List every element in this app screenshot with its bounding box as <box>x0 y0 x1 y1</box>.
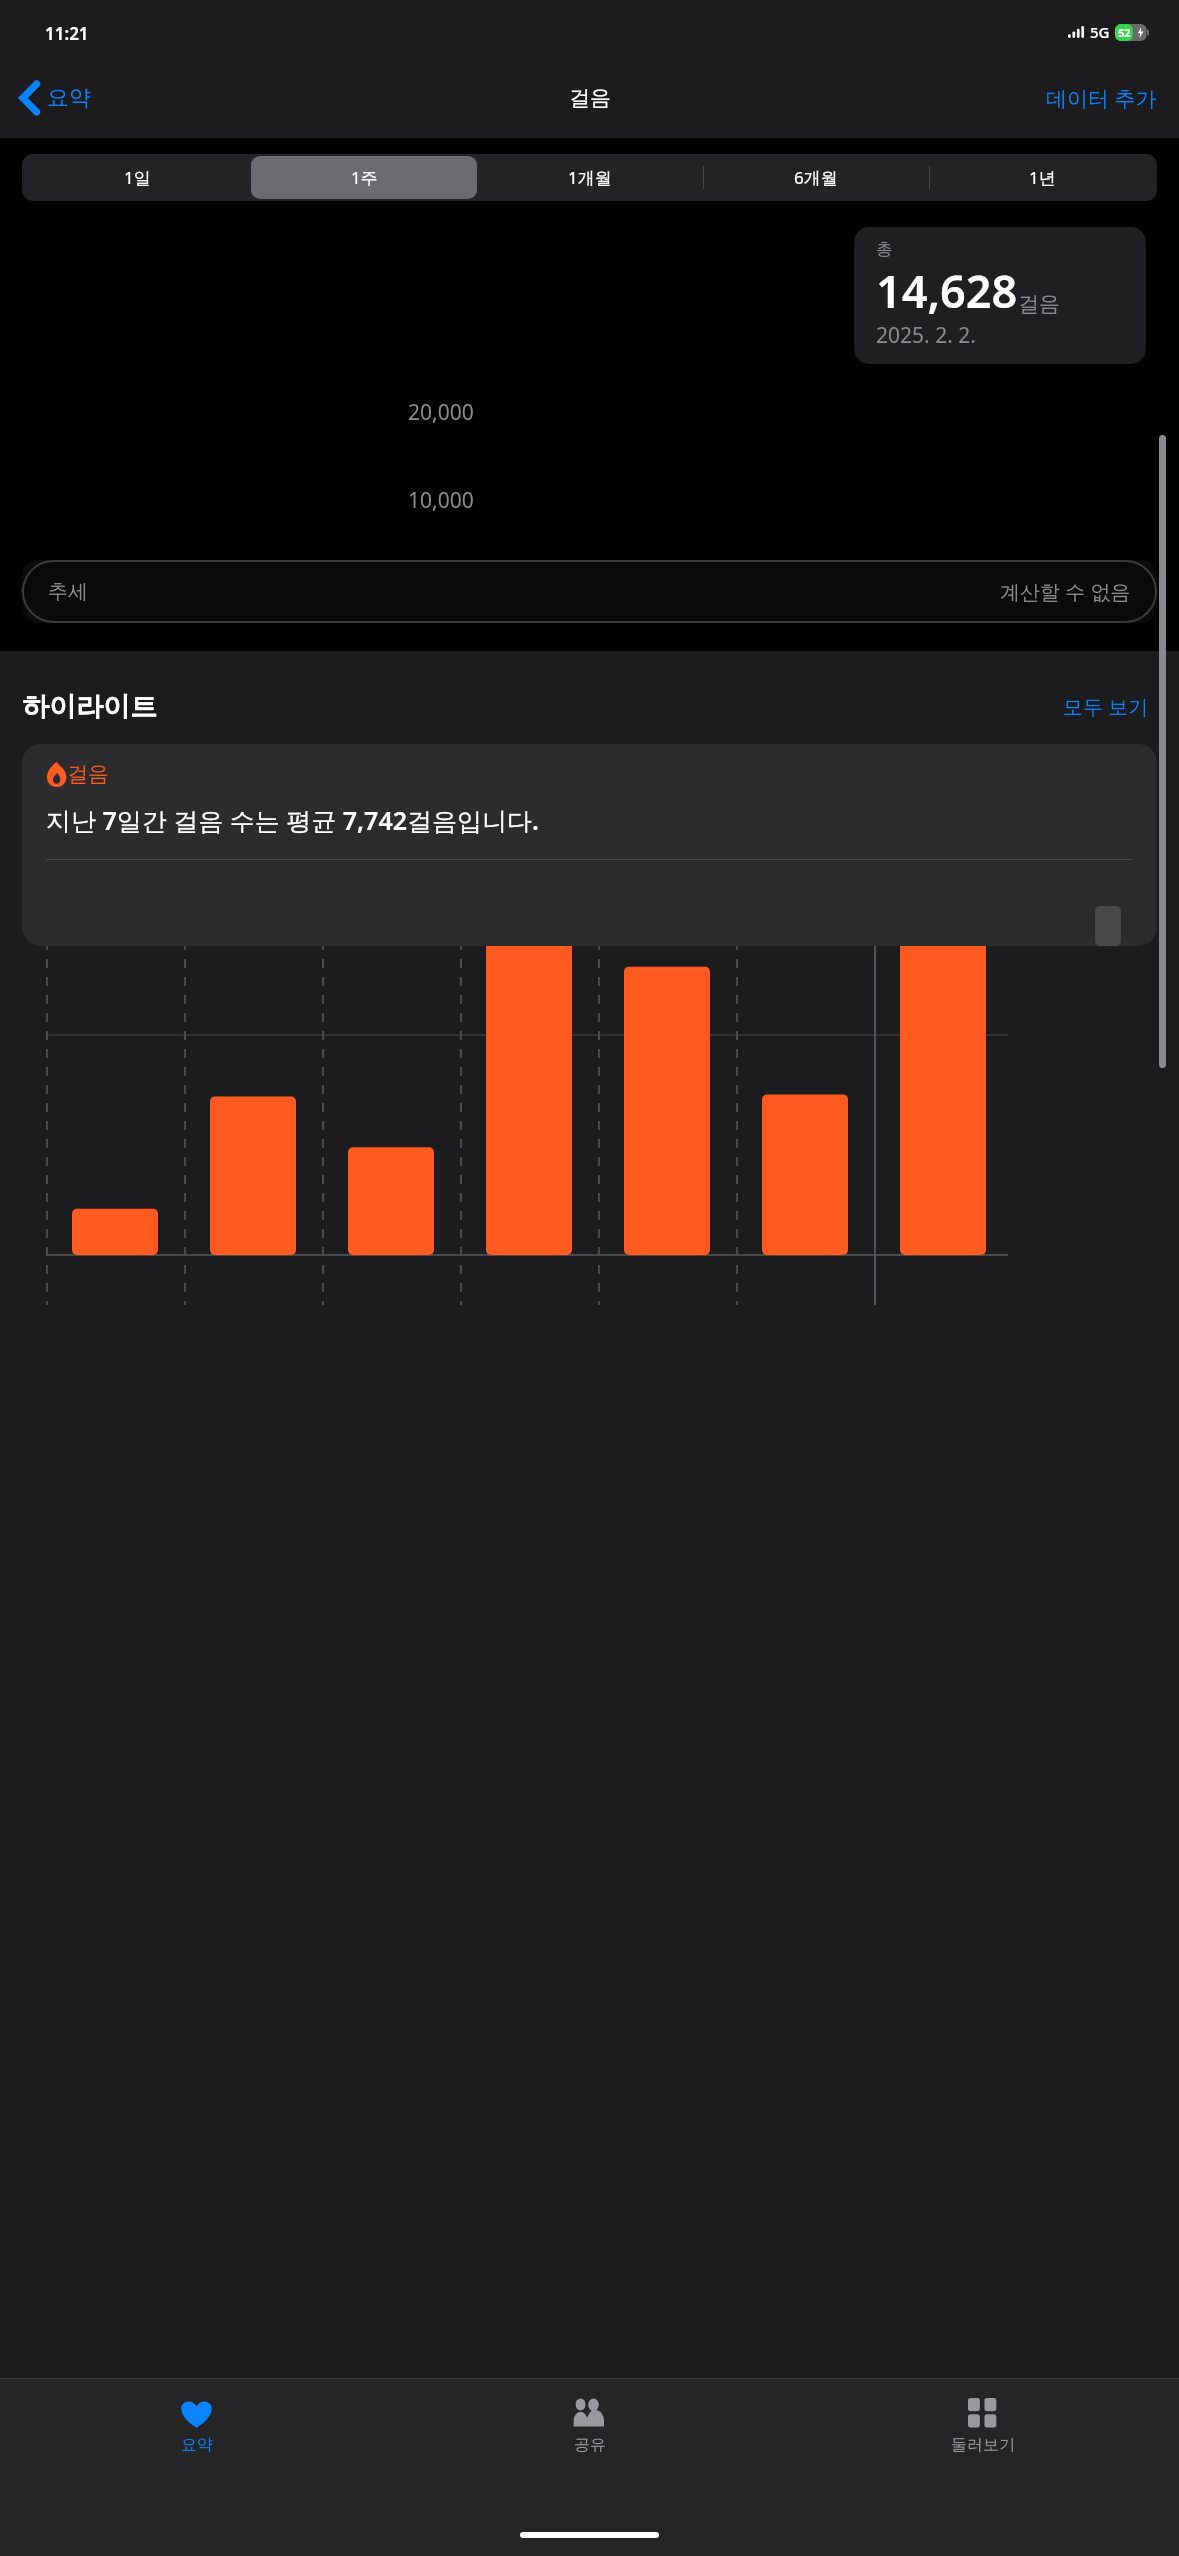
staticText: 11:21 <box>45 22 89 45</box>
button[interactable]: 6개월 <box>703 156 929 199</box>
button[interactable]: 추세 <box>22 560 1157 623</box>
staticText: 1일 <box>124 166 151 189</box>
staticText: 걸음 <box>569 85 611 111</box>
staticText: 추세 <box>48 579 88 604</box>
staticText: 1개월 <box>568 166 612 189</box>
staticText: 1년 <box>1029 166 1056 189</box>
button[interactable]: 공유 <box>393 2392 786 2461</box>
button[interactable]: 1일 <box>24 156 251 199</box>
staticText: 계산할 수 없음 <box>1000 578 1131 605</box>
staticText: 52 <box>1118 25 1131 40</box>
staticText: 1주 <box>351 166 378 189</box>
staticText: 총 <box>876 239 893 260</box>
staticText: 요약 <box>47 84 91 112</box>
staticText: 화 <box>75 580 93 603</box>
button[interactable]: 요약 <box>0 2392 393 2461</box>
staticText: 둘러보기 <box>951 2435 1015 2455</box>
button[interactable]: 모두 보기 <box>1055 685 1157 728</box>
staticText: 10,000 <box>408 486 474 515</box>
button[interactable]: 데이터 추가 <box>1032 76 1179 121</box>
staticText: 2025. 2. 2. <box>876 321 976 350</box>
staticText: 20,000 <box>408 398 474 427</box>
button[interactable]: 걸음 <box>22 744 1157 946</box>
button[interactable]: 요약 <box>0 76 105 120</box>
button[interactable]: 1년 <box>929 156 1155 199</box>
staticText: 하이라이트 <box>22 690 157 724</box>
staticText: 요약 <box>181 2435 213 2455</box>
staticText: 걸음 <box>67 761 109 787</box>
staticText: 5G <box>1090 22 1110 42</box>
staticText: 지난 7일간 걸음 수는 평균 7,742걸음입니다. <box>46 803 539 837</box>
staticText: 월 <box>20 580 38 603</box>
staticText: 공유 <box>574 2435 606 2455</box>
staticText: 6개월 <box>794 166 838 189</box>
staticText: 14,628 <box>876 260 1018 321</box>
button[interactable]: 1주 <box>251 156 477 199</box>
staticText: 걸음 <box>1018 291 1060 317</box>
button[interactable]: 1개월 <box>477 156 703 199</box>
button[interactable]: 둘러보기 <box>786 2392 1179 2461</box>
